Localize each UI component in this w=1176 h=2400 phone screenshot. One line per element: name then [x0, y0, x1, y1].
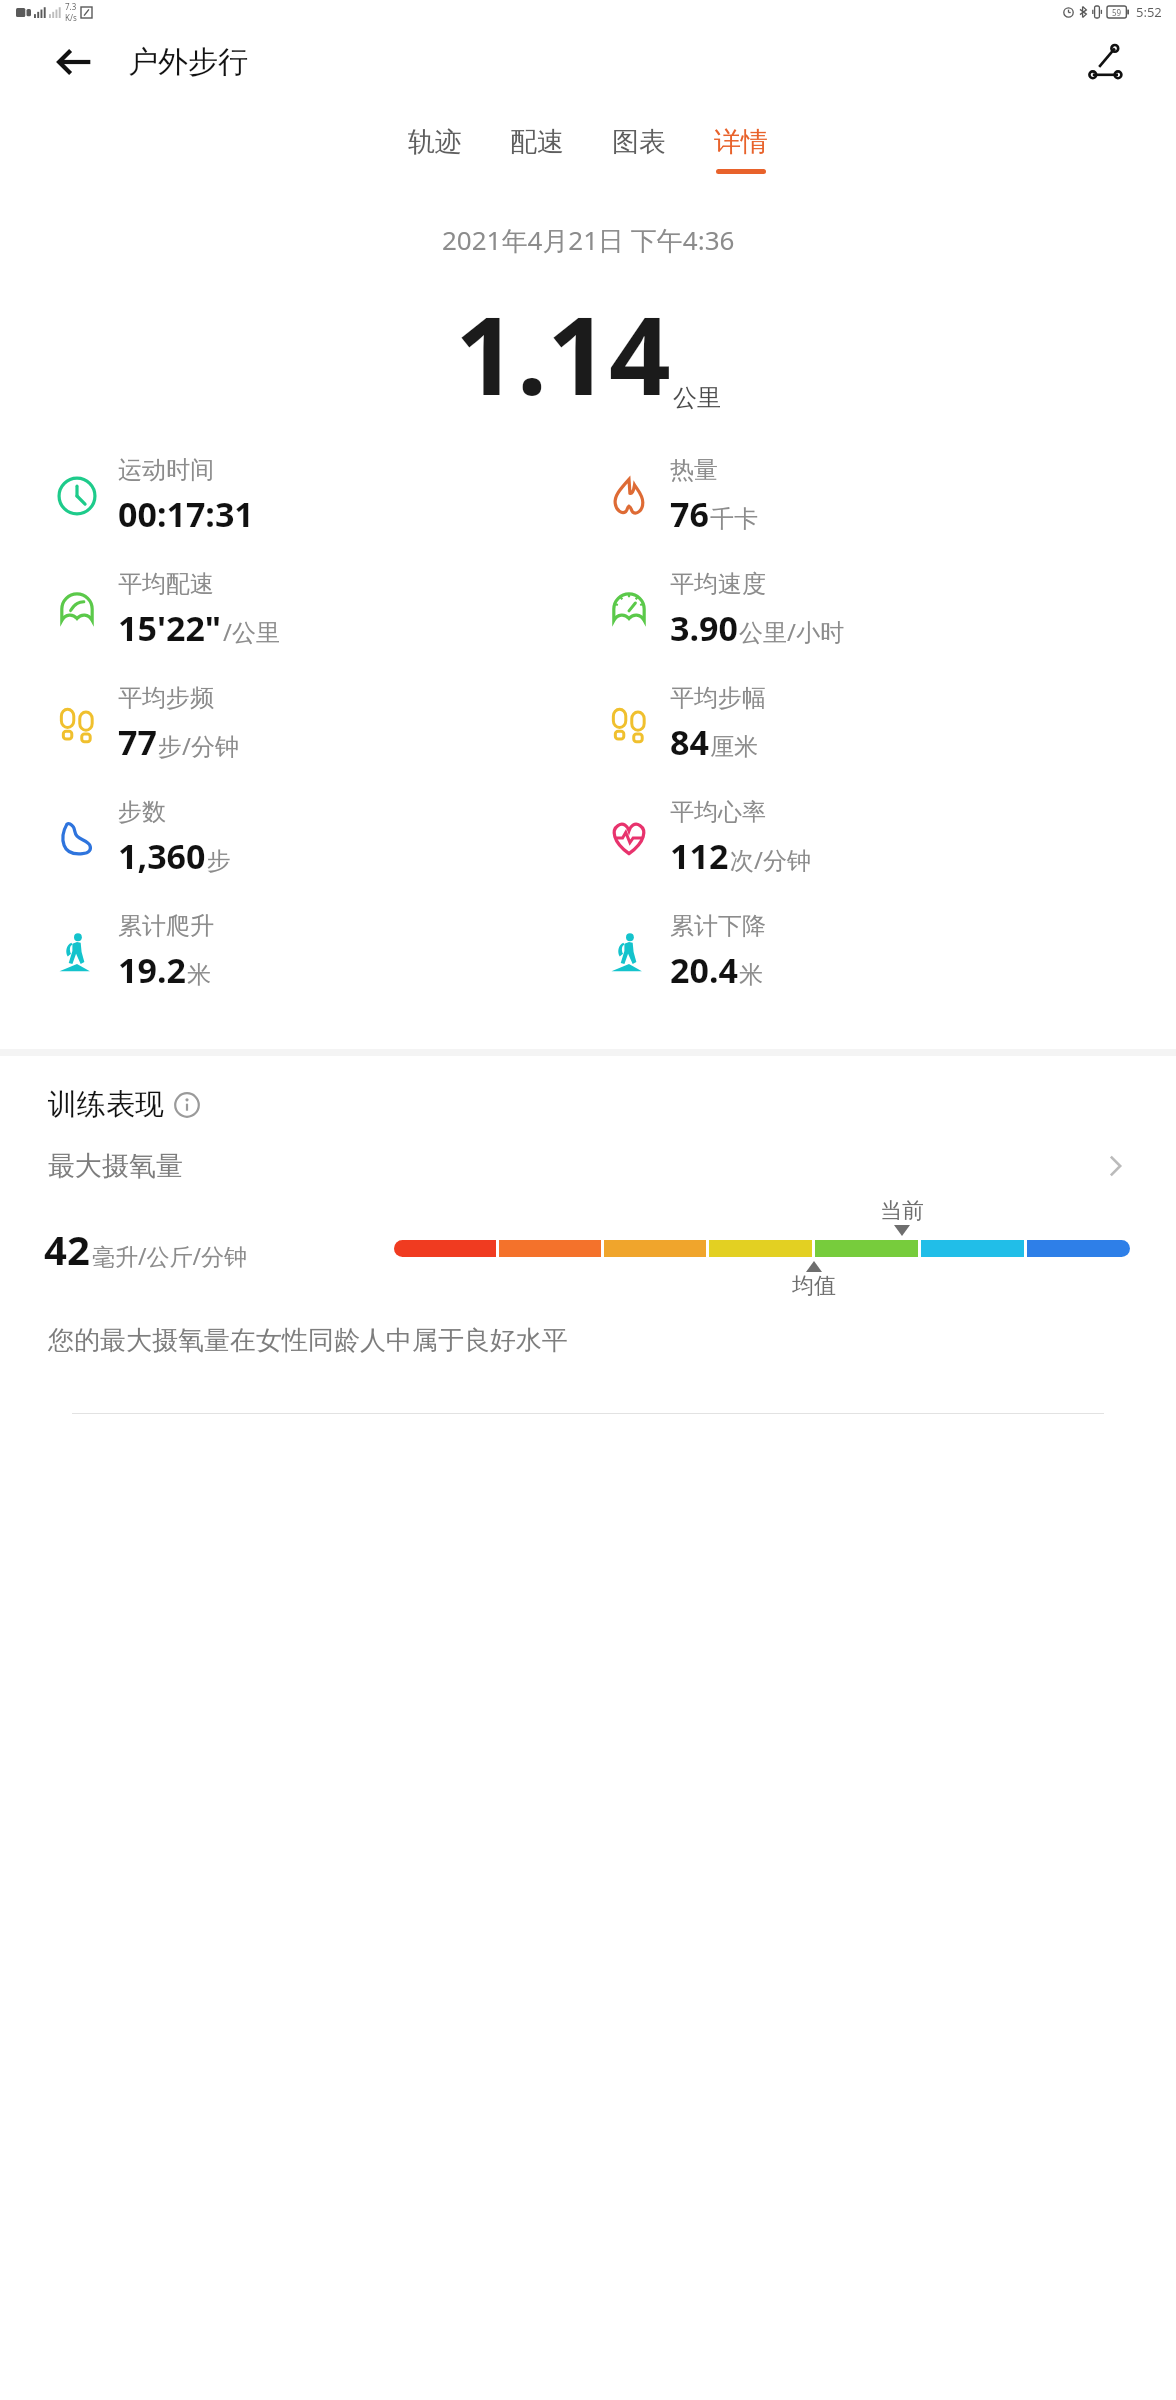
staticText: 公里	[673, 383, 721, 413]
staticText: 毫升/公斤/分钟	[92, 1240, 248, 1271]
staticText: 2021年4月21日 下午4:36	[442, 222, 735, 258]
staticText: /公里	[223, 615, 280, 648]
staticText: 步/分钟	[158, 729, 239, 762]
staticText: 平均配速	[118, 569, 214, 599]
staticText: 00:17:31	[118, 491, 254, 537]
staticText: 累计爬升	[118, 911, 214, 941]
staticText: 76	[670, 491, 709, 537]
staticText: 5:52	[1136, 3, 1162, 21]
staticText: 轨迹	[408, 125, 462, 159]
staticText: 112	[670, 833, 729, 879]
staticText: 步数	[118, 797, 166, 827]
button[interactable]: 轨迹	[384, 125, 486, 174]
staticText: 户外步行	[128, 43, 248, 81]
staticText: 详情	[714, 125, 768, 159]
button[interactable]: 配速	[486, 125, 588, 174]
staticText: 您的最大摄氧量在女性同龄人中属于良好水平	[48, 1324, 568, 1357]
staticText: 平均速度	[670, 569, 766, 599]
staticText: 图表	[612, 125, 666, 159]
staticText: 84	[670, 719, 709, 765]
button[interactable]: 详情	[690, 125, 792, 174]
staticText: 厘米	[710, 732, 758, 762]
button[interactable]: 图表	[588, 125, 690, 174]
button[interactable]: 平均配速	[50, 569, 588, 651]
staticText: K/s	[65, 12, 77, 23]
staticText: 米	[739, 960, 763, 990]
button[interactable]: 平均步幅	[602, 683, 1176, 765]
button[interactable]: 累计爬升	[50, 911, 588, 993]
staticText: 均值	[792, 1272, 836, 1300]
staticText: 1,360	[118, 833, 206, 879]
staticText: 7.3	[65, 1, 77, 12]
staticText: 42	[44, 1222, 90, 1276]
staticText: 平均心率	[670, 797, 766, 827]
button[interactable]: 运动时间	[50, 455, 588, 537]
staticText: 公里/小时	[739, 615, 844, 648]
button[interactable]: 平均速度	[602, 569, 1176, 651]
button[interactable]: 平均心率	[602, 797, 1176, 879]
button[interactable]: 训练表现	[48, 1086, 200, 1123]
staticText: 累计下降	[670, 911, 766, 941]
button[interactable]: 累计下降	[602, 911, 1176, 993]
staticText: 米	[187, 960, 211, 990]
staticText: 次/分钟	[730, 843, 811, 876]
button[interactable]: 步数	[50, 797, 588, 879]
staticText: 平均步幅	[670, 683, 766, 713]
button[interactable]: 分享	[1076, 32, 1136, 92]
staticText: 1.14	[455, 280, 671, 427]
staticText: 3.90	[670, 605, 738, 651]
staticText: 配速	[510, 125, 564, 159]
staticText: 20.4	[670, 947, 738, 993]
button[interactable]: 热量	[602, 455, 1176, 537]
staticText: 热量	[670, 455, 718, 485]
staticText: 千卡	[710, 504, 758, 534]
button[interactable]: 返回	[48, 36, 100, 88]
button[interactable]: 最大摄氧量	[0, 1149, 1176, 1183]
staticText: 59	[1112, 7, 1122, 18]
staticText: 最大摄氧量	[48, 1149, 1100, 1183]
staticText: 15'22"	[118, 605, 222, 651]
staticText: 77	[118, 719, 157, 765]
staticText: 步	[207, 846, 231, 876]
staticText: 当前	[880, 1197, 924, 1225]
staticText: 运动时间	[118, 455, 214, 485]
staticText: 平均步频	[118, 683, 214, 713]
staticText: 19.2	[118, 947, 186, 993]
button[interactable]: 平均步频	[50, 683, 588, 765]
staticText: 训练表现	[48, 1086, 164, 1123]
other: 查看详情	[1100, 1151, 1130, 1181]
